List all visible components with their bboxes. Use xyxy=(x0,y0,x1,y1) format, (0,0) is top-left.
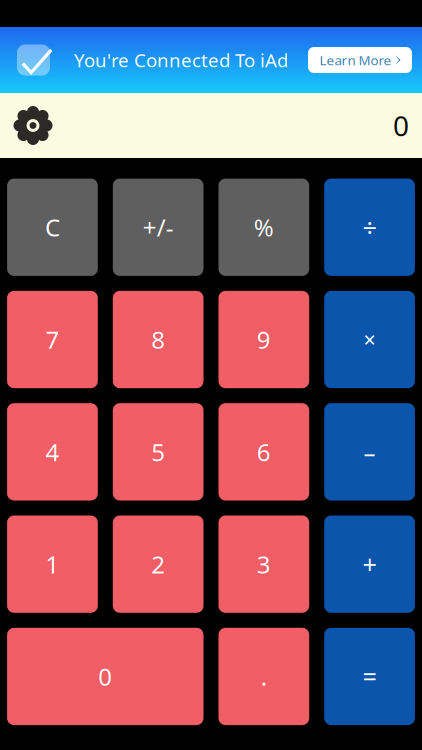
button[interactable]: 2 xyxy=(113,515,203,613)
staticText: × xyxy=(364,325,376,354)
button[interactable]: = xyxy=(324,628,415,725)
staticText: 6 xyxy=(257,436,271,468)
button[interactable]: 9 xyxy=(218,291,309,388)
staticText: 2 xyxy=(151,548,165,580)
staticText: % xyxy=(254,211,274,243)
button[interactable]: ÷ xyxy=(324,179,415,276)
button[interactable]: C xyxy=(7,179,98,276)
staticText: 4 xyxy=(45,436,59,468)
button[interactable]: 6 xyxy=(218,403,309,500)
staticText: You're Connected To iAd xyxy=(74,48,288,72)
staticText: + xyxy=(363,547,377,581)
button[interactable]: 0 xyxy=(7,628,203,725)
button[interactable]: – xyxy=(324,403,415,500)
staticText: 3 xyxy=(257,548,271,580)
button[interactable]: 8 xyxy=(113,291,203,388)
staticText: . xyxy=(261,660,267,692)
button[interactable]: 5 xyxy=(113,403,203,500)
button[interactable]: + xyxy=(324,515,415,613)
button[interactable]: 3 xyxy=(218,515,309,613)
button[interactable]: 1 xyxy=(7,515,98,613)
button[interactable]: × xyxy=(324,291,415,388)
staticText: 8 xyxy=(151,324,165,355)
button[interactable]: . xyxy=(218,628,309,725)
staticText: 1 xyxy=(45,548,59,580)
staticText: ÷ xyxy=(363,210,377,244)
button[interactable]: % xyxy=(218,179,309,276)
staticText: C xyxy=(45,211,60,243)
staticText: 5 xyxy=(151,436,165,468)
button[interactable]: 7 xyxy=(7,291,98,388)
staticText: 0 xyxy=(393,107,409,144)
button[interactable]: Settings xyxy=(0,93,66,158)
staticText: 9 xyxy=(257,324,271,355)
staticText: = xyxy=(363,660,377,693)
staticText: – xyxy=(364,436,376,468)
staticText: 7 xyxy=(45,324,59,355)
staticText: Learn More xyxy=(319,51,391,69)
staticText: 0 xyxy=(98,660,112,692)
button[interactable]: +/- xyxy=(113,179,203,276)
staticText: +/- xyxy=(143,211,174,243)
button[interactable]: You're Connected To iAd xyxy=(0,27,422,93)
button[interactable]: 4 xyxy=(7,403,98,500)
